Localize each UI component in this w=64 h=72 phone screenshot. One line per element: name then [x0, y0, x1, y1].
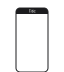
staticText: Title: [28, 8, 35, 14]
